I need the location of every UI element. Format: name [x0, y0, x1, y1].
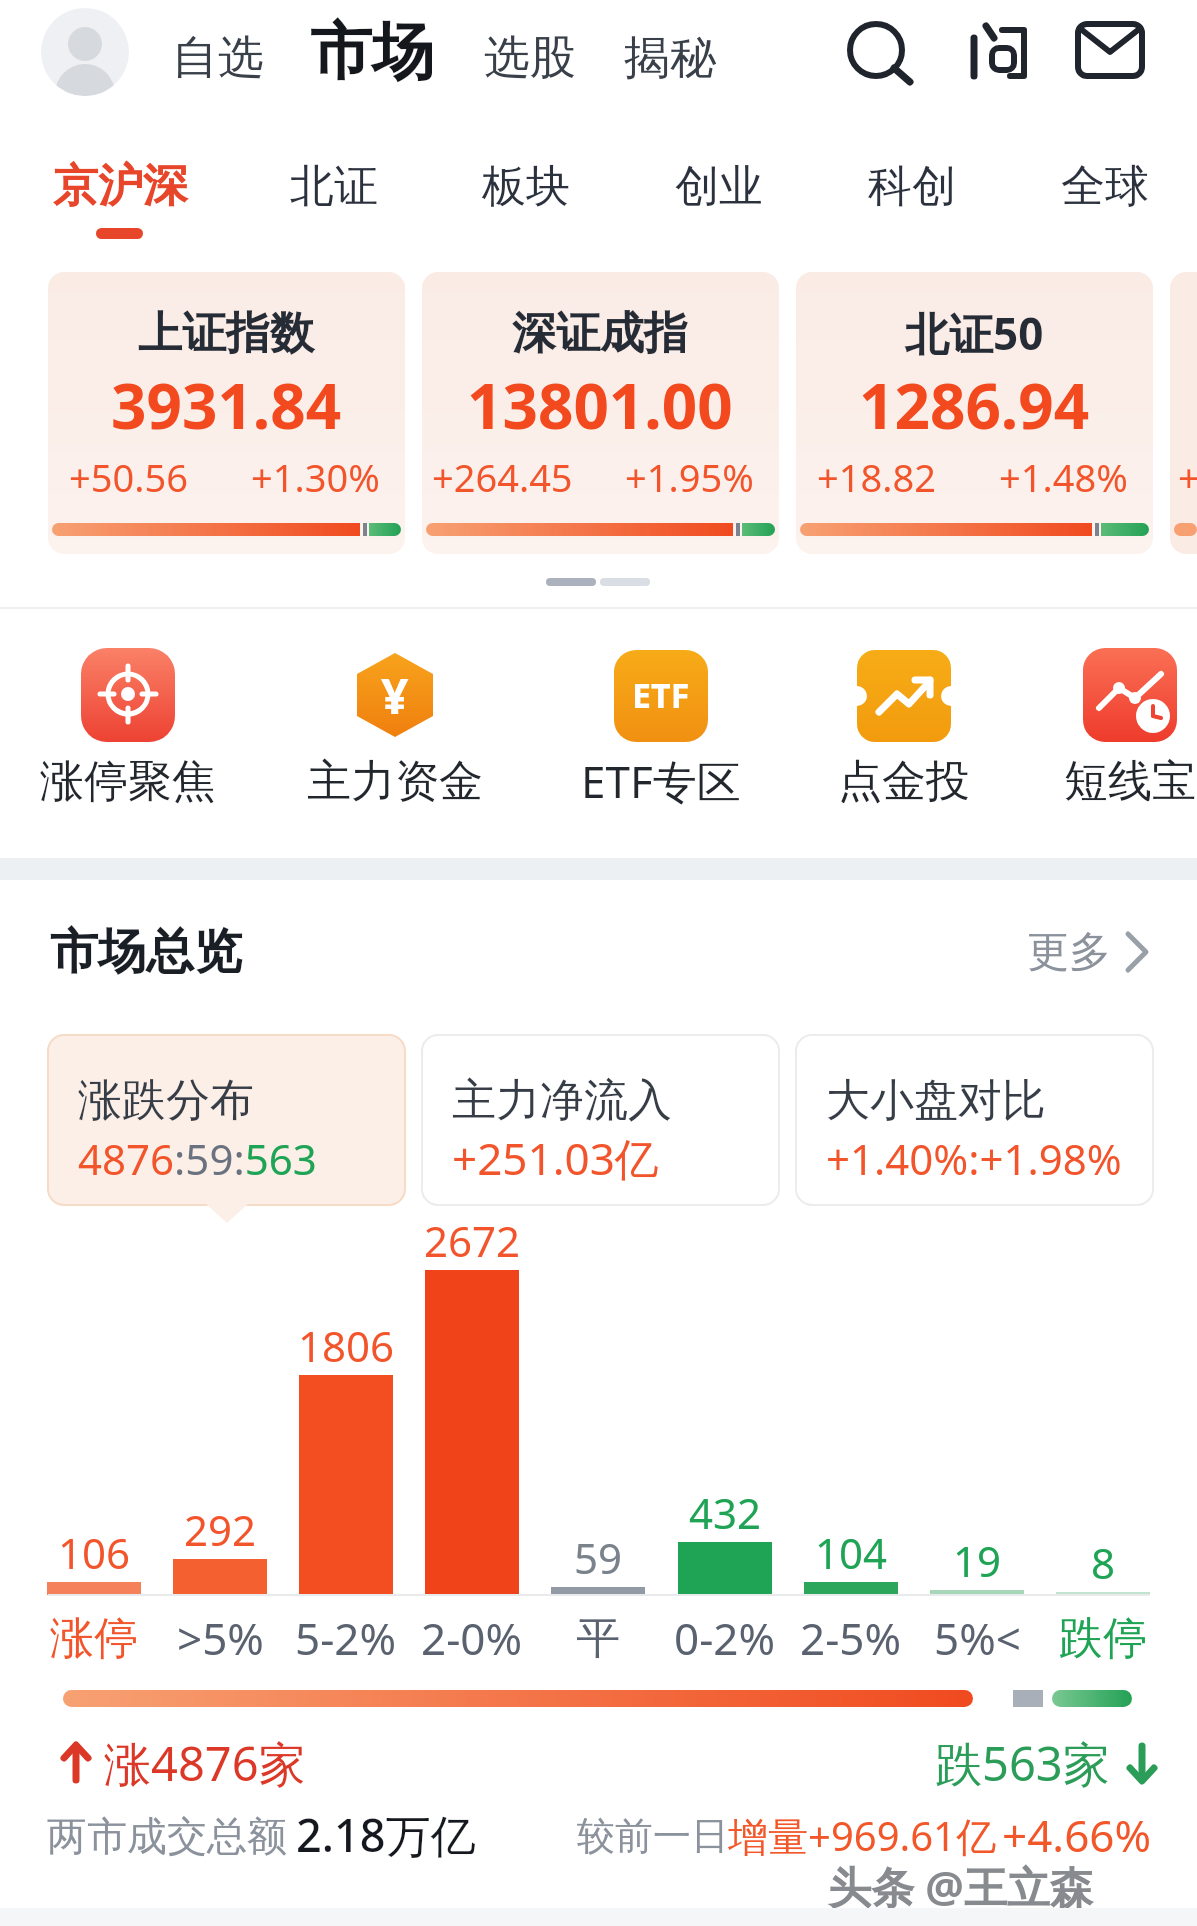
staticText: 1286.94	[859, 363, 1090, 447]
staticText: +1	[1178, 451, 1197, 503]
button[interactable]	[48, 272, 405, 554]
button[interactable]	[610, 20, 726, 90]
button[interactable]	[300, 10, 445, 94]
button[interactable]	[160, 20, 276, 90]
staticText: 头条 @王立森	[828, 1857, 1093, 1916]
button[interactable]	[40, 150, 205, 245]
staticText: 全球	[1061, 159, 1149, 214]
staticText: +1.40%:+1.98%	[826, 1130, 1122, 1187]
button[interactable]	[264, 150, 404, 230]
staticText: 432	[689, 1484, 762, 1541]
staticText: 106	[58, 1524, 131, 1581]
staticText: 短线宝	[1064, 754, 1196, 809]
button[interactable]	[470, 20, 586, 90]
button[interactable]	[1066, 640, 1194, 820]
staticText: 104	[815, 1524, 888, 1581]
button[interactable]	[1072, 18, 1148, 84]
staticText: 2672	[424, 1212, 521, 1269]
staticText: 点金投	[838, 754, 970, 809]
staticText: 北证50	[905, 303, 1044, 363]
staticText: 涨4876家	[104, 1731, 306, 1795]
staticText: +1.48%	[999, 451, 1128, 503]
button[interactable]	[649, 150, 789, 230]
staticText: ETF	[632, 672, 690, 718]
staticText: +1.30%	[251, 451, 380, 503]
staticText: 上证指数	[138, 306, 314, 361]
button[interactable]	[331, 640, 459, 820]
staticText: 5-2%	[295, 1608, 397, 1668]
staticText: ETF专区	[581, 751, 741, 811]
staticText: 更多	[1027, 926, 1111, 979]
button[interactable]	[840, 640, 968, 820]
staticText: 增量+969.61亿	[728, 1808, 996, 1863]
staticText: 选股	[484, 29, 576, 87]
staticText: 平	[576, 1611, 620, 1666]
staticText: 创业	[675, 159, 763, 214]
staticText: 板块	[482, 159, 570, 214]
staticText: 较前一日	[577, 1812, 729, 1860]
button[interactable]	[422, 1035, 779, 1205]
staticText: +4.66%	[1002, 1805, 1152, 1865]
staticText: 涨停聚焦	[40, 754, 216, 809]
button[interactable]	[597, 640, 725, 820]
staticText: 292	[184, 1501, 257, 1558]
button[interactable]	[842, 150, 982, 230]
staticText: 跌停	[1059, 1611, 1147, 1666]
staticText: 1806	[298, 1317, 395, 1374]
staticText: 5%<	[934, 1608, 1021, 1668]
staticText: +50.56	[69, 451, 188, 503]
staticText: >5%	[177, 1608, 264, 1668]
staticText: 跌563家	[935, 1731, 1110, 1795]
staticText: 主力净流入	[452, 1073, 672, 1128]
button[interactable]	[842, 16, 918, 92]
staticText: 北证	[290, 159, 378, 214]
staticText: 2.18万亿	[296, 1804, 476, 1865]
staticText: 4876:59:563	[78, 1130, 317, 1187]
staticText: +1.95%	[625, 451, 754, 503]
button[interactable]	[796, 1035, 1153, 1205]
staticText: 13801.00	[467, 363, 733, 447]
staticText: ¥	[381, 663, 409, 728]
staticText: 2-0%	[421, 1608, 523, 1668]
button[interactable]	[1000, 915, 1160, 990]
staticText: 59	[574, 1529, 623, 1586]
staticText: +18.82	[817, 451, 936, 503]
staticText: 19	[953, 1532, 1002, 1589]
staticText: 涨停	[50, 1611, 138, 1666]
staticText: 两市成交总额	[47, 1811, 287, 1861]
staticText: 市场	[310, 13, 434, 91]
button[interactable]	[41, 8, 129, 96]
staticText: +264.45	[432, 451, 573, 503]
button[interactable]	[456, 150, 596, 230]
staticText: 京沪深	[53, 158, 188, 215]
staticText: 科创	[868, 159, 956, 214]
staticText: 0-2%	[674, 1608, 776, 1668]
button[interactable]	[422, 272, 779, 554]
staticText: 2-5%	[800, 1608, 902, 1668]
staticText: 揭秘	[624, 29, 716, 87]
staticText: +251.03亿	[452, 1128, 659, 1188]
staticText: 8	[1091, 1534, 1116, 1591]
staticText: 自选	[172, 29, 264, 87]
staticText: 涨跌分布	[78, 1073, 254, 1128]
button[interactable]	[964, 14, 1040, 92]
button[interactable]	[1035, 150, 1175, 230]
staticText: 大小盘对比	[826, 1073, 1046, 1128]
button[interactable]	[64, 640, 192, 820]
staticText: 主力资金	[307, 754, 483, 809]
staticText: 3931.84	[111, 363, 342, 447]
staticText: 市场总览	[50, 922, 242, 982]
button[interactable]	[796, 272, 1153, 554]
staticText: 深证成指	[512, 306, 688, 361]
button[interactable]	[48, 1035, 405, 1205]
